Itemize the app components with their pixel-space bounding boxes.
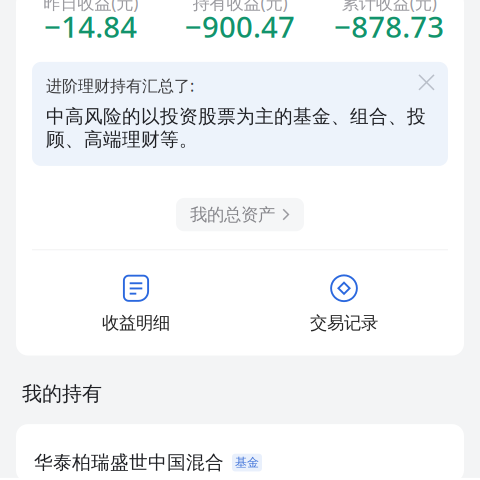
staticText: 交易记录	[310, 312, 378, 334]
staticText: 进阶理财持有汇总了:	[46, 75, 194, 96]
staticText: 基金	[235, 455, 259, 470]
staticText: 持有收益(元)	[192, 0, 287, 14]
staticText: 华泰柏瑞盛世中国混合	[34, 451, 224, 474]
button[interactable]: 收益明细	[32, 274, 240, 334]
staticText: 昨日收益(元)	[43, 0, 138, 14]
staticText: 累计收益(元)	[342, 0, 437, 14]
button[interactable]: 关闭	[418, 74, 435, 91]
staticText: 收益明细	[102, 312, 170, 334]
staticText: −14.84	[44, 7, 137, 46]
staticText: 我的总资产	[190, 204, 275, 225]
staticText: 我的持有	[22, 381, 102, 406]
staticText: −900.47	[185, 7, 295, 46]
staticText: −878.73	[334, 7, 444, 46]
button[interactable]: 交易记录	[240, 274, 448, 334]
button[interactable]: 华泰柏瑞盛世中国混合	[16, 424, 464, 480]
button[interactable]: 我的总资产	[176, 198, 304, 231]
staticText: 中高风险的以投资股票为主的基金、组合、投顾、高端理财等。	[46, 105, 426, 151]
